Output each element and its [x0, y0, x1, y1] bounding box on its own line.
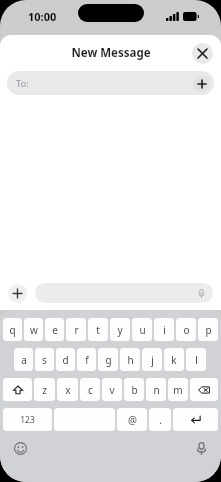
button[interactable]: Dictation [194, 441, 208, 455]
staticText: s [42, 353, 47, 367]
button[interactable]: i [154, 318, 174, 341]
staticText: 10:00 [28, 9, 57, 24]
button[interactable]: q [3, 318, 22, 341]
staticText: p [205, 323, 212, 337]
button[interactable]: . [149, 408, 171, 431]
staticText: q [9, 323, 16, 337]
staticText: . [159, 413, 162, 427]
button[interactable]: Return [173, 408, 218, 431]
staticText: r [74, 323, 79, 337]
button[interactable]: a [14, 348, 33, 371]
button[interactable]: c [80, 378, 100, 401]
staticText: i [163, 323, 166, 337]
button[interactable]: p [198, 318, 218, 341]
button[interactable]: n [146, 378, 166, 401]
button[interactable]: t [88, 318, 108, 341]
button[interactable]: o [176, 318, 196, 341]
button[interactable]: e [45, 318, 64, 341]
button[interactable]: Voice message [196, 288, 206, 298]
staticText: a [21, 353, 27, 367]
button[interactable]: u [132, 318, 152, 341]
button[interactable]: @ [117, 408, 147, 431]
button[interactable]: Add contact [193, 75, 210, 92]
button[interactable]: s [35, 348, 54, 371]
button[interactable]: h [120, 348, 140, 371]
button[interactable]: z [34, 378, 55, 401]
button[interactable]: Voice message [35, 283, 213, 303]
staticText: d [62, 353, 69, 367]
staticText: 123 [20, 414, 35, 426]
button[interactable]: Close [192, 43, 213, 64]
staticText: w [30, 323, 38, 337]
staticText: To: [16, 77, 29, 90]
staticText: @ [128, 413, 137, 427]
button[interactable]: r [66, 318, 86, 341]
button[interactable]: j [142, 348, 162, 371]
button[interactable]: Shift [3, 378, 32, 401]
staticText: l [195, 353, 198, 367]
staticText: x [65, 383, 71, 397]
button[interactable]: b [124, 378, 144, 401]
staticText: b [131, 383, 138, 397]
staticText: y [117, 323, 123, 337]
button[interactable]: m [168, 378, 188, 401]
staticText: c [88, 383, 93, 397]
button[interactable]: Backspace [190, 378, 218, 401]
button[interactable]: g [98, 348, 118, 371]
button[interactable]: y [110, 318, 130, 341]
button[interactable]: d [56, 348, 75, 371]
staticText: n [153, 383, 160, 397]
staticText: k [171, 353, 177, 367]
button[interactable]: f [77, 348, 96, 371]
button[interactable]: Add attachment [8, 284, 27, 303]
staticText: New Message [71, 45, 151, 61]
button[interactable] [54, 408, 115, 431]
staticText: t [96, 323, 100, 337]
button[interactable]: w [24, 318, 43, 341]
staticText: z [42, 383, 47, 397]
button[interactable]: l [186, 348, 206, 371]
staticText: g [105, 353, 112, 367]
staticText: u [139, 323, 146, 337]
button[interactable]: v [102, 378, 122, 401]
staticText: e [52, 323, 58, 337]
staticText: m [173, 383, 183, 397]
staticText: f [85, 353, 89, 367]
button[interactable]: k [164, 348, 184, 371]
staticText: j [151, 353, 154, 367]
staticText: o [183, 323, 190, 337]
button[interactable]: 123 [3, 408, 52, 431]
button[interactable]: Emoji [13, 441, 27, 455]
staticText: h [127, 353, 134, 367]
button[interactable]: x [57, 378, 78, 401]
button[interactable]: To: [7, 71, 214, 95]
staticText: v [109, 383, 115, 397]
